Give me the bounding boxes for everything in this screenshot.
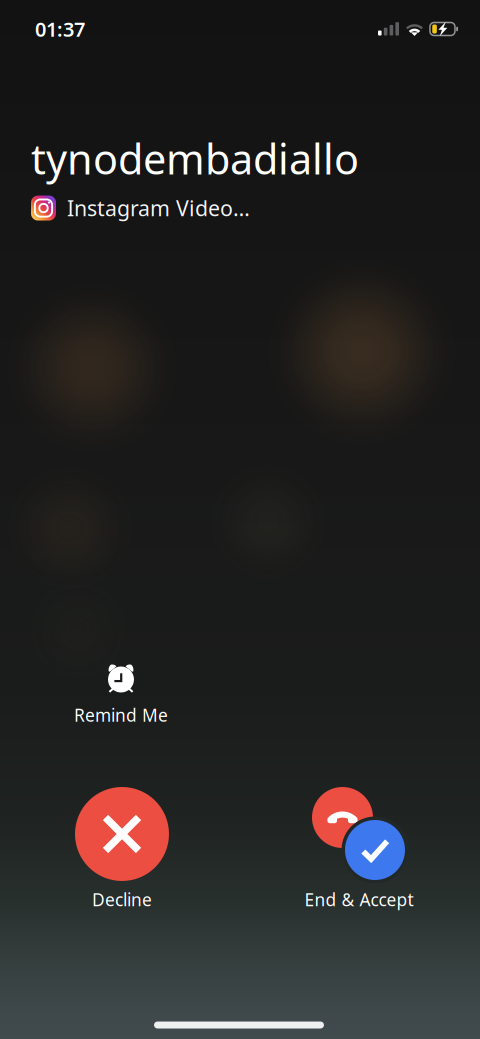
staticText: tynodembadiallo [31, 131, 359, 186]
staticText: Remind Me [74, 703, 168, 726]
staticText: Decline [92, 888, 152, 911]
button[interactable]: Decline [47, 785, 197, 915]
staticText: 01:37 [35, 16, 85, 42]
button[interactable]: End & Accept [292, 767, 442, 917]
staticText: End & Accept [304, 888, 413, 911]
staticText: Instagram Video… [67, 194, 250, 222]
button[interactable]: Remind Me [56, 664, 186, 726]
